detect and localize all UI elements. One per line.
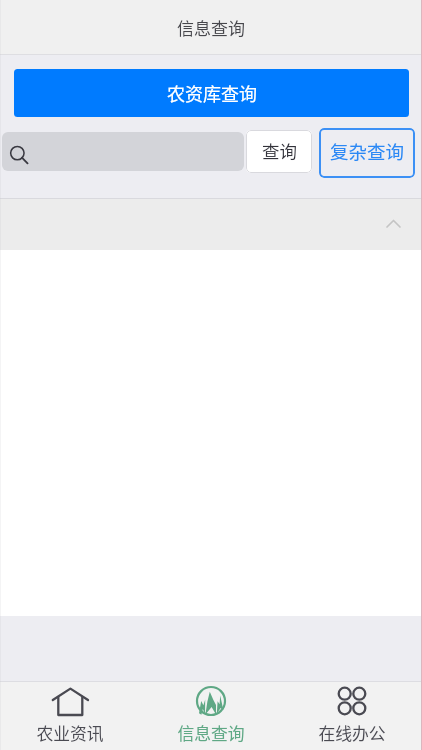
staticText: 查询 bbox=[262, 138, 297, 163]
button[interactable]: 农资库查询 bbox=[14, 69, 409, 117]
button[interactable]: 信息查询 bbox=[140, 682, 281, 750]
button[interactable]: 农业资讯 bbox=[0, 682, 140, 750]
staticText: 农资库查询 bbox=[167, 80, 257, 106]
staticText: 信息查询 bbox=[177, 15, 245, 40]
button[interactable]: Search field bbox=[2, 132, 244, 171]
button[interactable]: 查询 bbox=[246, 130, 312, 173]
staticText: 农业资讯 bbox=[36, 721, 104, 745]
staticText: 复杂查询 bbox=[330, 138, 405, 165]
staticText: 在线办公 bbox=[318, 721, 386, 745]
button[interactable]: 复杂查询 bbox=[319, 128, 415, 178]
staticText: 信息查询 bbox=[177, 721, 245, 745]
button[interactable]: 在线办公 bbox=[281, 682, 422, 750]
